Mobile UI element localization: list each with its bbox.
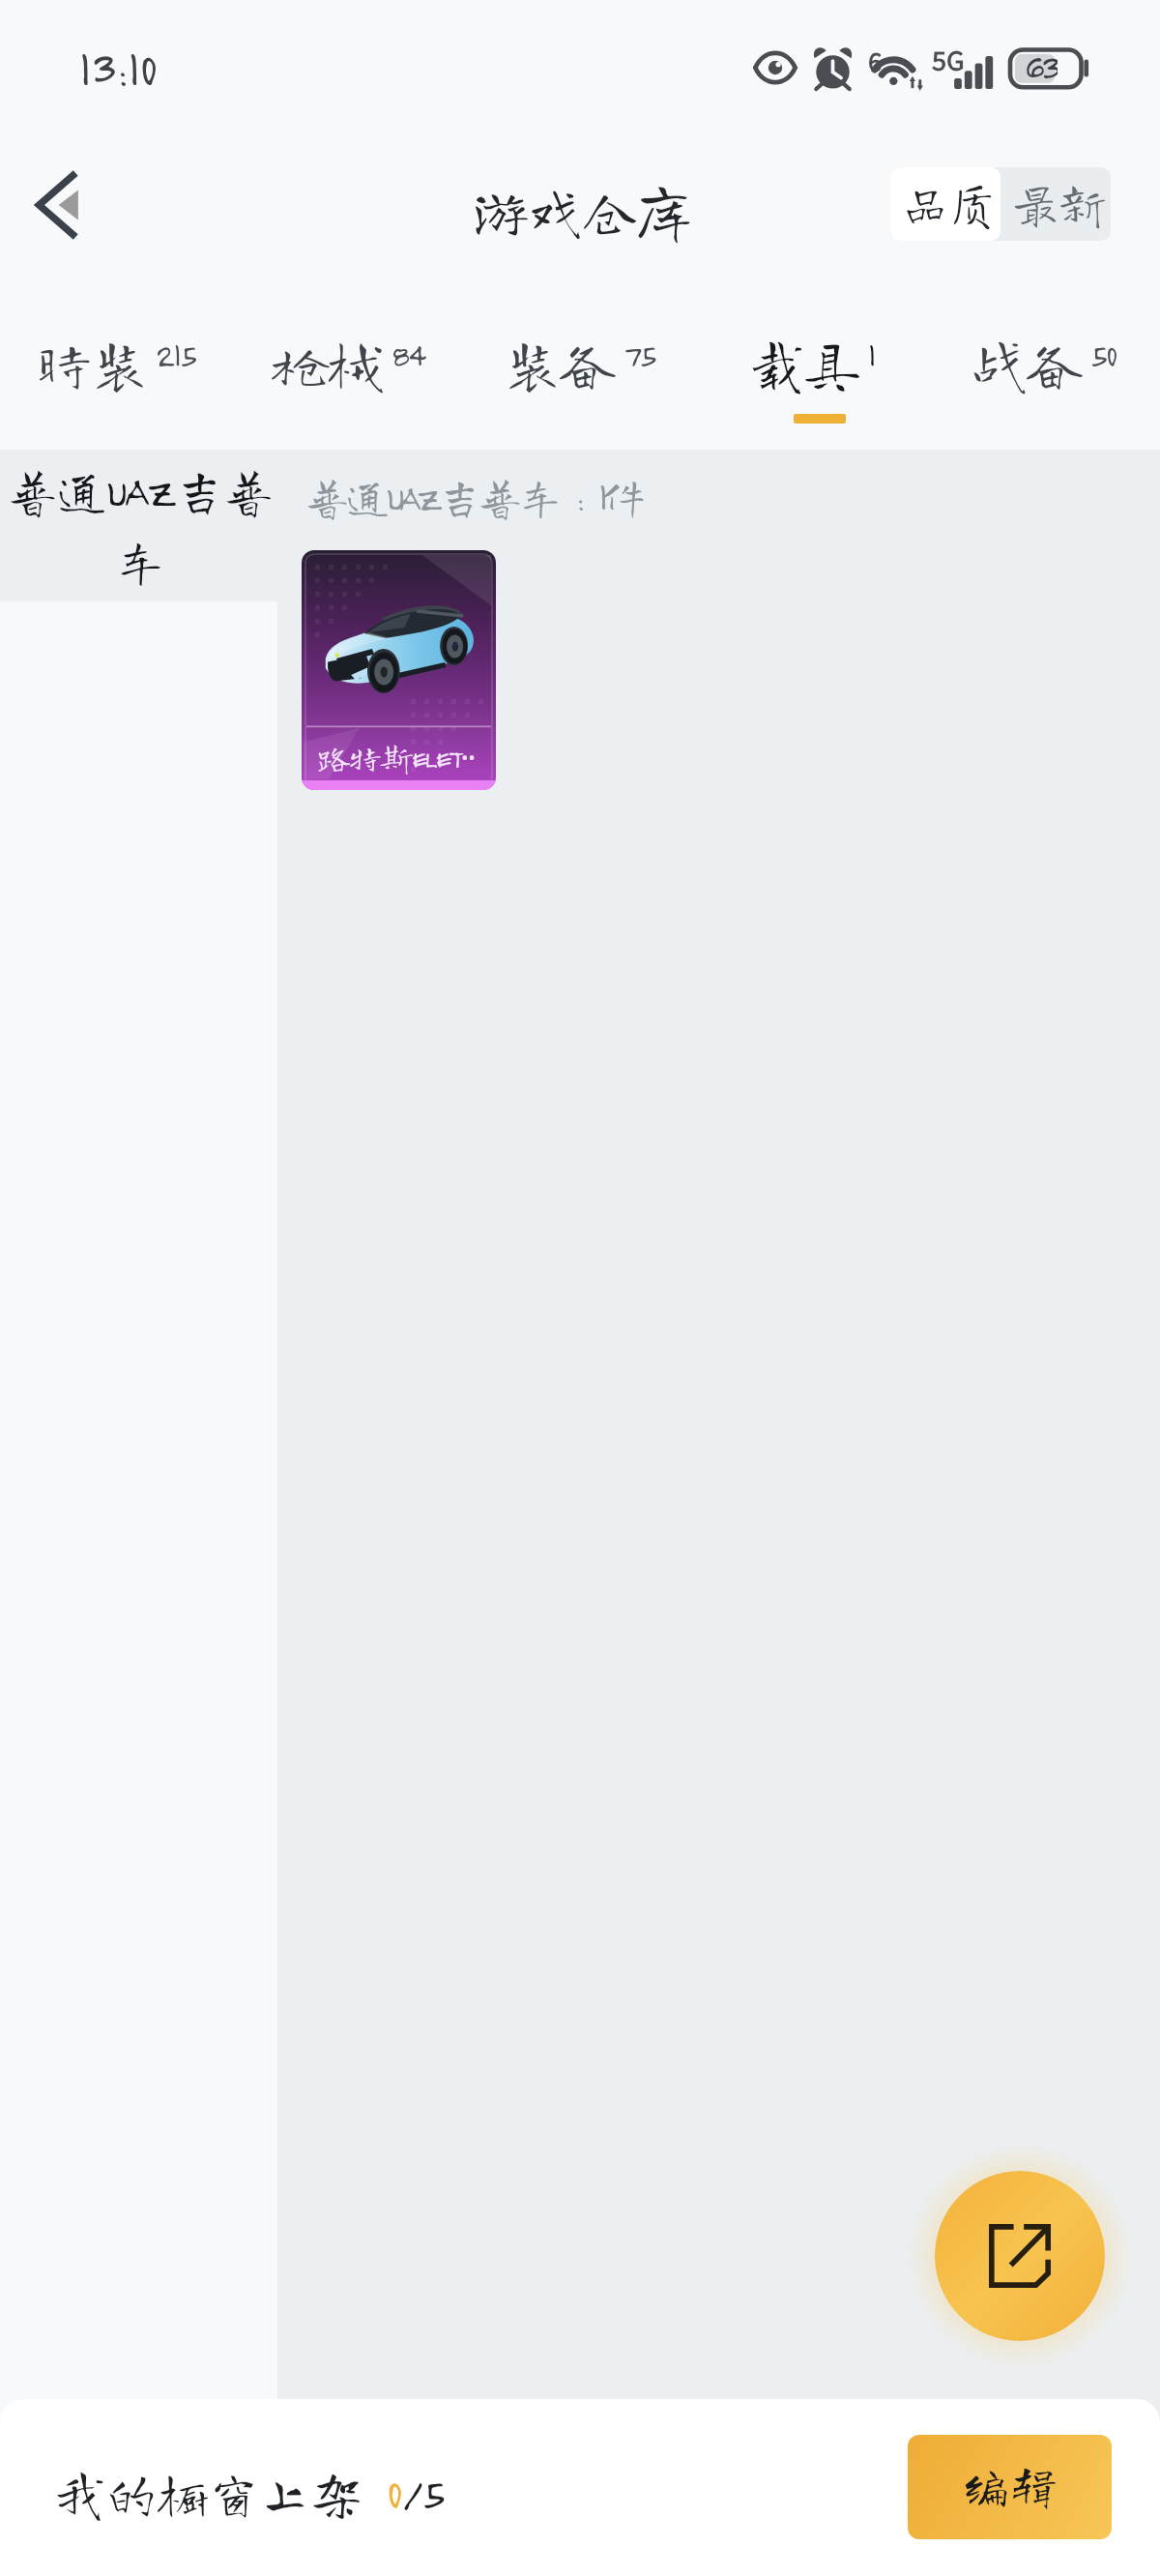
staticText: 1 bbox=[868, 336, 875, 374]
button[interactable]: Back bbox=[15, 157, 97, 253]
staticText: 我的橱窗上架 bbox=[54, 2466, 387, 2518]
staticText: 0 bbox=[387, 2466, 401, 2518]
staticText: /5 bbox=[401, 2466, 444, 2518]
staticText: 最新 bbox=[1010, 178, 1106, 228]
button[interactable]: 普通UAZ吉普车 bbox=[0, 450, 277, 601]
staticText: 84 bbox=[391, 336, 424, 374]
button[interactable]: 路特斯ELET·· bbox=[302, 550, 496, 790]
staticText: 品质 bbox=[900, 178, 996, 228]
staticText: 编辑 bbox=[962, 2461, 1058, 2509]
staticText: 13:10 bbox=[79, 39, 158, 97]
staticText: 装备 bbox=[505, 336, 616, 392]
staticText: 时装 bbox=[37, 336, 148, 392]
staticText: 5G bbox=[932, 41, 965, 78]
button[interactable]: 装备 bbox=[464, 314, 696, 450]
staticText: 枪械 bbox=[273, 336, 384, 392]
button[interactable]: 战备 bbox=[928, 314, 1160, 450]
button[interactable]: 编辑 bbox=[908, 2435, 1112, 2539]
staticText: 战备 bbox=[971, 336, 1083, 392]
staticText: 路特斯ELET·· bbox=[318, 735, 475, 779]
staticText: 50 bbox=[1090, 336, 1116, 374]
button[interactable]: 品质 bbox=[890, 167, 1000, 241]
button[interactable]: 枪械 bbox=[232, 314, 464, 450]
staticText: 普通UAZ吉普车 bbox=[4, 463, 275, 587]
button[interactable]: 载具 bbox=[696, 314, 928, 450]
button[interactable]: 最新 bbox=[1000, 167, 1111, 241]
staticText: 6 bbox=[868, 43, 883, 79]
staticText: 游戏仓库 bbox=[472, 180, 689, 240]
staticText: 63 bbox=[1025, 44, 1058, 86]
staticText: 普通UAZ吉普车：1件 bbox=[304, 474, 642, 519]
staticText: 75 bbox=[623, 336, 655, 374]
button[interactable]: 时装 bbox=[0, 314, 232, 450]
button[interactable]: Share to showcase bbox=[935, 2171, 1105, 2341]
staticText: 载具 bbox=[749, 336, 860, 392]
staticText: 215 bbox=[156, 336, 196, 374]
